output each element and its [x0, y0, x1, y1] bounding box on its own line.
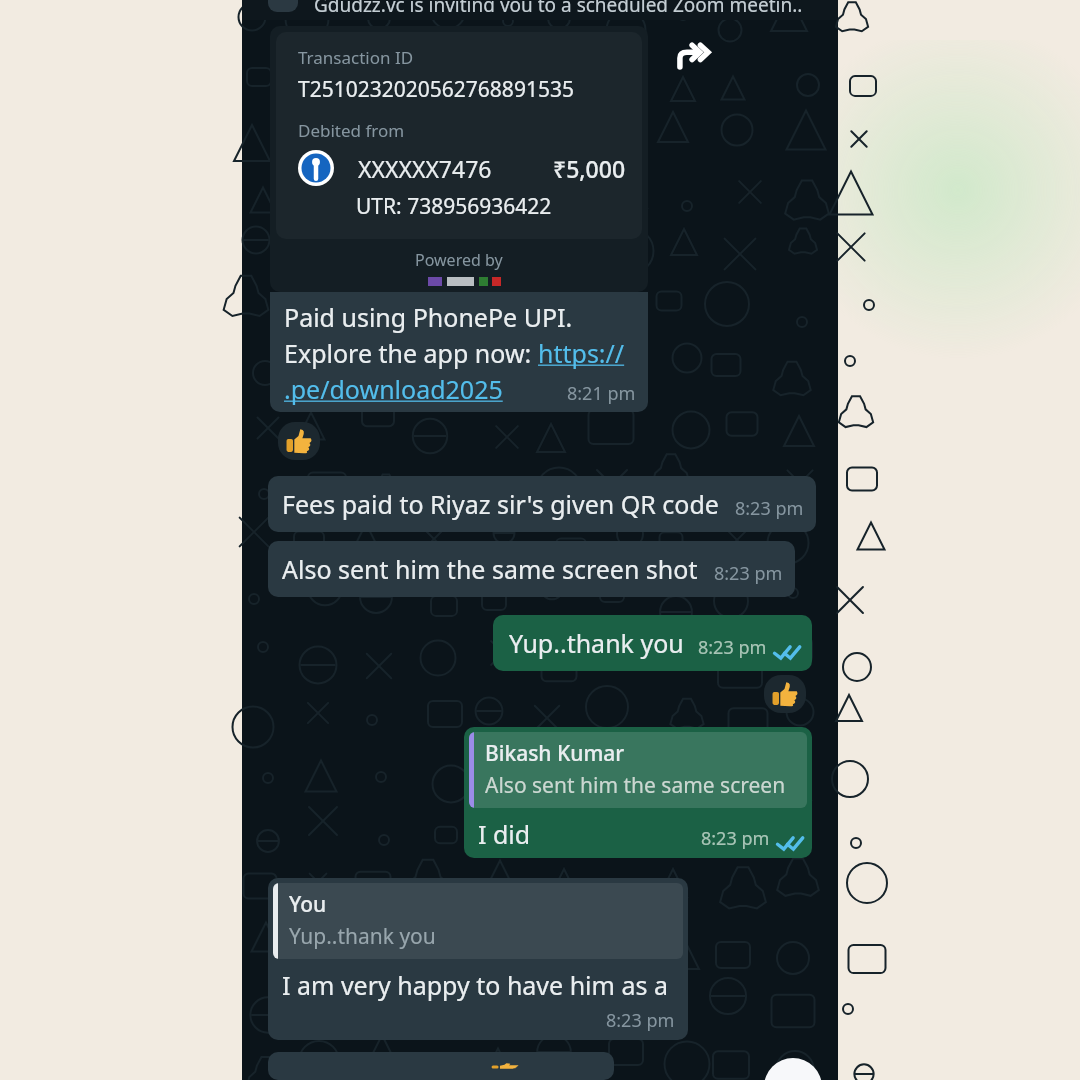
staticText: 8:23 pm: [714, 561, 783, 586]
button[interactable]: Paid using PhonePe UPI.: [270, 292, 648, 412]
staticText: Debited from: [298, 119, 405, 142]
staticText: Fees paid to Riyaz sir's given QR code: [282, 487, 719, 521]
button[interactable]: Thumbs up reaction: [278, 422, 320, 460]
staticText: T2510232020562768891535: [298, 75, 574, 104]
button[interactable]: Scroll to bottom: [764, 1058, 822, 1080]
button[interactable]: Transaction ID: [270, 26, 648, 292]
button[interactable]: Thumbs up reaction: [764, 675, 806, 713]
staticText: .pe/download2025: [284, 372, 503, 406]
staticText: Also sent him the same screen shot: [485, 771, 807, 800]
staticText: Explore the app now:: [284, 336, 538, 370]
staticText: ₹5,000: [553, 153, 626, 184]
staticText: Yup..thank you: [289, 922, 436, 951]
staticText: 8:23 pm: [701, 826, 770, 851]
staticText: Also sent him the same screen shot: [282, 552, 698, 586]
staticText: UTR: 738956936422: [356, 192, 552, 221]
button[interactable]: Forward: [670, 34, 718, 82]
button[interactable]: You: [268, 878, 688, 1040]
button[interactable]: Bikash Kumar: [464, 727, 812, 858]
staticText: Transaction ID: [298, 46, 414, 69]
staticText: I am very happy to have him as a trainer: [282, 968, 683, 1002]
staticText: Yup..thank you: [509, 626, 684, 660]
staticText: XXXXXX7476: [358, 153, 492, 184]
staticText: You: [289, 890, 327, 919]
staticText: Paid using PhonePe UPI.: [284, 300, 573, 334]
staticText: 8:21 pm: [567, 381, 636, 406]
staticText: 8:23 pm: [698, 635, 767, 660]
button[interactable]: Yup..thank you: [493, 615, 812, 671]
staticText: Powered by: [415, 249, 503, 271]
staticText: Gdudzz.vc is inviting you to a scheduled…: [314, 0, 803, 12]
staticText: 8:23 pm: [606, 1008, 675, 1033]
staticText: https://phon: [538, 336, 636, 370]
button[interactable]: Also sent him the same screen shot: [268, 541, 795, 597]
button[interactable]: He is really great: [268, 1052, 614, 1080]
staticText: 8:23 pm: [735, 496, 804, 521]
staticText: Bikash Kumar: [485, 739, 625, 768]
button[interactable]: Fees paid to Riyaz sir's given QR code: [268, 476, 816, 532]
staticText: I did: [478, 817, 531, 851]
